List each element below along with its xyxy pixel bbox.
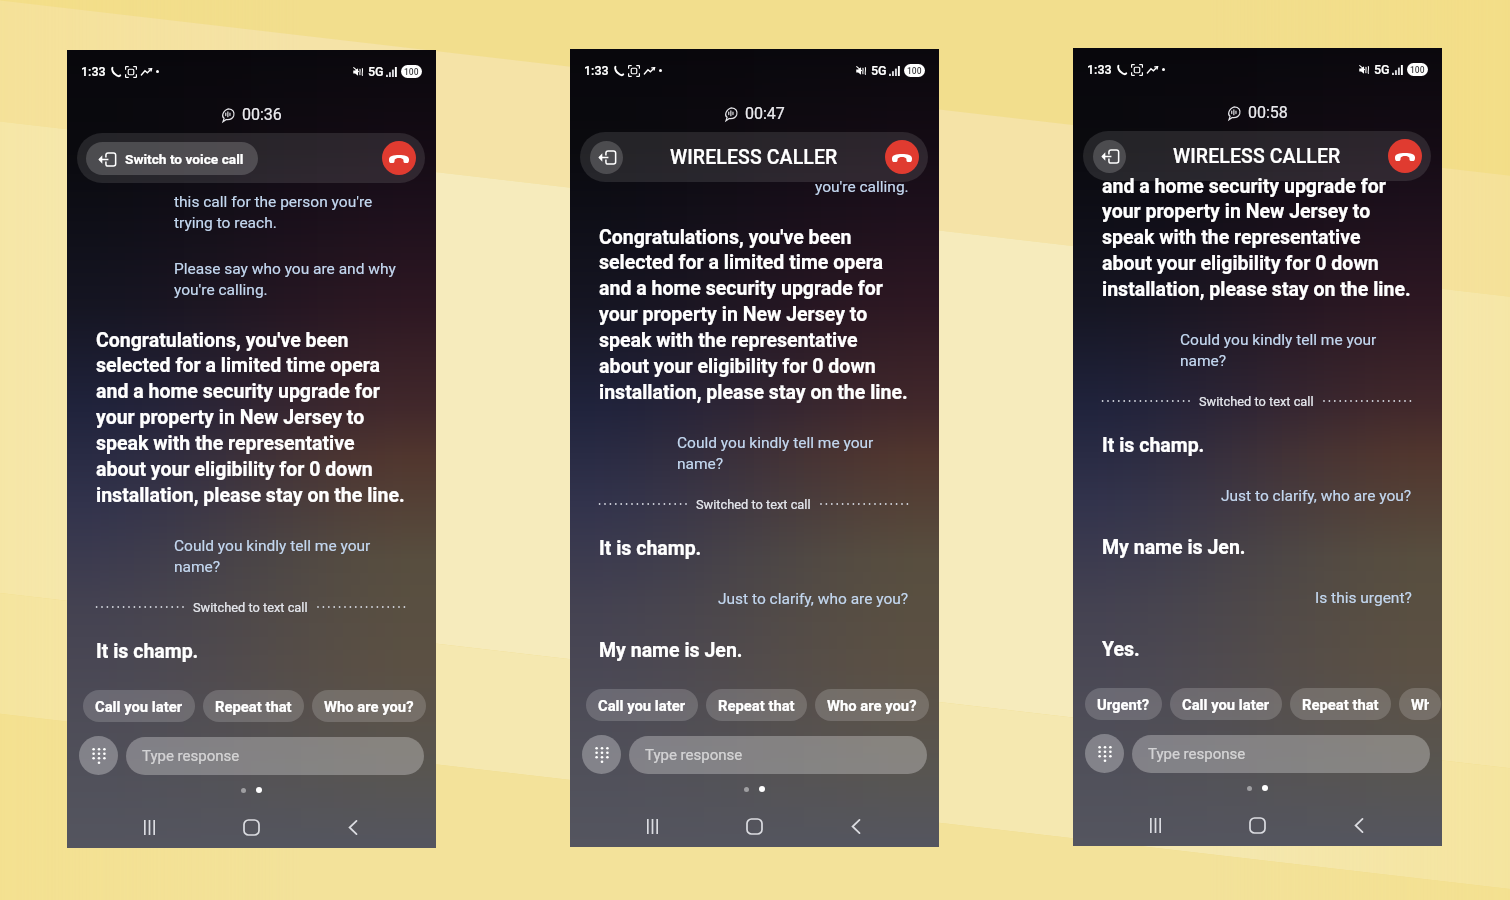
staticText: Repeat that	[1302, 696, 1379, 713]
button[interactable]: Call you later	[83, 690, 195, 722]
button[interactable]: Back	[1339, 811, 1379, 840]
staticText: Just to clarify, who are you?	[1221, 487, 1412, 505]
button[interactable]: Recents	[129, 813, 169, 842]
button[interactable]: End call	[382, 141, 416, 175]
staticText: My name is Jen.	[1102, 536, 1412, 559]
staticText: WIRELESS CALLER	[670, 146, 838, 169]
staticText: you're calling.	[815, 178, 909, 196]
staticText: 5G	[368, 64, 384, 79]
button[interactable]: Call you later	[1170, 688, 1282, 720]
staticText: Yes.	[1102, 638, 1412, 661]
staticText: Could you kindly tell me your name?	[174, 537, 406, 576]
button[interactable]: Keypad	[582, 735, 621, 774]
button[interactable]: Recents	[1135, 811, 1175, 840]
staticText: Type response	[142, 747, 240, 765]
staticText: this call for the person you're trying t…	[174, 193, 406, 232]
button[interactable]: End call	[885, 140, 919, 174]
staticText: Who are you?	[827, 697, 917, 714]
button[interactable]: Who are you?	[312, 690, 426, 722]
staticText: Call you later	[1182, 696, 1270, 713]
staticText: 00:58	[1248, 103, 1288, 122]
staticText: and a home security upgrade for your pro…	[1102, 175, 1412, 301]
button[interactable]: Switch to voice call	[86, 142, 258, 175]
button[interactable]: Who are you?	[815, 689, 929, 721]
staticText: It is champ.	[1102, 434, 1412, 457]
staticText: 00:36	[242, 105, 282, 124]
button[interactable]: Recents	[632, 812, 672, 841]
staticText: Call you later	[598, 697, 686, 714]
button[interactable]: Back	[333, 813, 373, 842]
button[interactable]: Repeat that	[1290, 688, 1391, 720]
staticText: Type response	[645, 746, 743, 764]
staticText: Is this urgent?	[1315, 589, 1412, 607]
button[interactable]: Home	[1237, 811, 1277, 840]
staticText: 1:33	[1087, 62, 1112, 77]
staticText: 100	[404, 67, 419, 77]
staticText: 1:33	[81, 64, 106, 79]
staticText: Please say who you are and why you're ca…	[174, 260, 406, 299]
staticText: Urgent?	[1097, 696, 1150, 713]
button[interactable]: Repeat that	[203, 690, 304, 722]
button[interactable]: Home	[734, 812, 774, 841]
staticText: Who are you?	[324, 698, 414, 715]
button[interactable]: Keypad	[79, 736, 118, 775]
staticText: Congratulations, you've been selected fo…	[599, 226, 909, 404]
button[interactable]: Who are you?	[1399, 688, 1441, 720]
staticText: Switched to text call	[1199, 394, 1314, 408]
staticText: WIRELESS CALLER	[1173, 145, 1341, 168]
staticText: 5G	[1374, 62, 1390, 77]
staticText: Repeat that	[215, 698, 292, 715]
staticText: My name is Jen.	[599, 639, 909, 662]
button[interactable]: Call you later	[586, 689, 698, 721]
staticText: Congratulations, you've been selected fo…	[96, 329, 406, 507]
button[interactable]: End call	[1388, 139, 1422, 173]
staticText: Call you later	[95, 698, 183, 715]
staticText: It is champ.	[599, 537, 909, 560]
staticText: Switched to text call	[696, 497, 811, 511]
staticText: Switched to text call	[193, 600, 308, 614]
button[interactable]: Keypad	[1085, 734, 1124, 773]
staticText: Repeat that	[718, 697, 795, 714]
button[interactable]: Home	[231, 813, 271, 842]
staticText: 00:47	[745, 104, 785, 123]
button[interactable]: Switch to voice call	[590, 141, 623, 174]
staticText: Just to clarify, who are you?	[718, 590, 909, 608]
staticText: 100	[1410, 65, 1425, 75]
staticText: It is champ.	[96, 640, 406, 663]
staticText: Switch to voice call	[125, 151, 244, 167]
button[interactable]: Type response	[126, 737, 424, 775]
button[interactable]: Type response	[629, 736, 927, 774]
staticText: 1:33	[584, 63, 609, 78]
staticText: 100	[907, 66, 922, 76]
button[interactable]: Urgent?	[1085, 688, 1162, 720]
button[interactable]: Back	[836, 812, 876, 841]
button[interactable]: Switch to voice call	[1093, 140, 1126, 173]
button[interactable]: Type response	[1132, 735, 1430, 773]
staticText: Could you kindly tell me your name?	[677, 434, 909, 473]
staticText: 5G	[871, 63, 887, 78]
staticText: Type response	[1148, 745, 1246, 763]
button[interactable]: Repeat that	[706, 689, 807, 721]
staticText: Could you kindly tell me your name?	[1180, 331, 1412, 370]
staticText: Who are you?	[1411, 696, 1429, 713]
